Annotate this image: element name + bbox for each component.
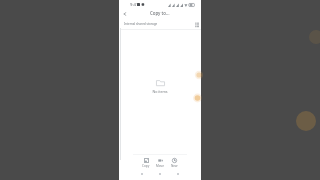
button[interactable]: Grid view [193, 20, 201, 28]
button[interactable]: Recents [173, 169, 183, 179]
button[interactable]: New [167, 158, 181, 168]
staticText: Copy [142, 164, 150, 168]
staticText: No items [152, 89, 168, 94]
staticText: Copy to… [150, 10, 170, 16]
staticText: Internal shared storage [124, 22, 158, 26]
staticText: Move [156, 164, 164, 168]
staticText: New [171, 164, 178, 168]
button[interactable]: Back [137, 169, 147, 179]
button[interactable]: Copy [139, 158, 153, 168]
staticText: 9:41 [130, 2, 139, 8]
button[interactable]: Move [153, 158, 167, 168]
button[interactable]: Home [155, 169, 165, 179]
button[interactable]: Back [120, 9, 130, 19]
